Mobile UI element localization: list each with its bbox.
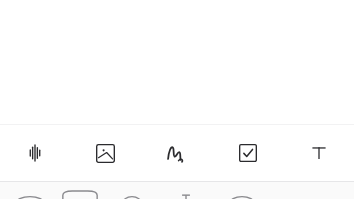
button[interactable]: Record audio — [0, 125, 70, 181]
button[interactable]: Add checklist — [212, 125, 283, 181]
button[interactable]: Draw — [141, 125, 212, 181]
button[interactable]: Insert image — [70, 125, 141, 181]
button[interactable]: Format text — [283, 125, 354, 181]
